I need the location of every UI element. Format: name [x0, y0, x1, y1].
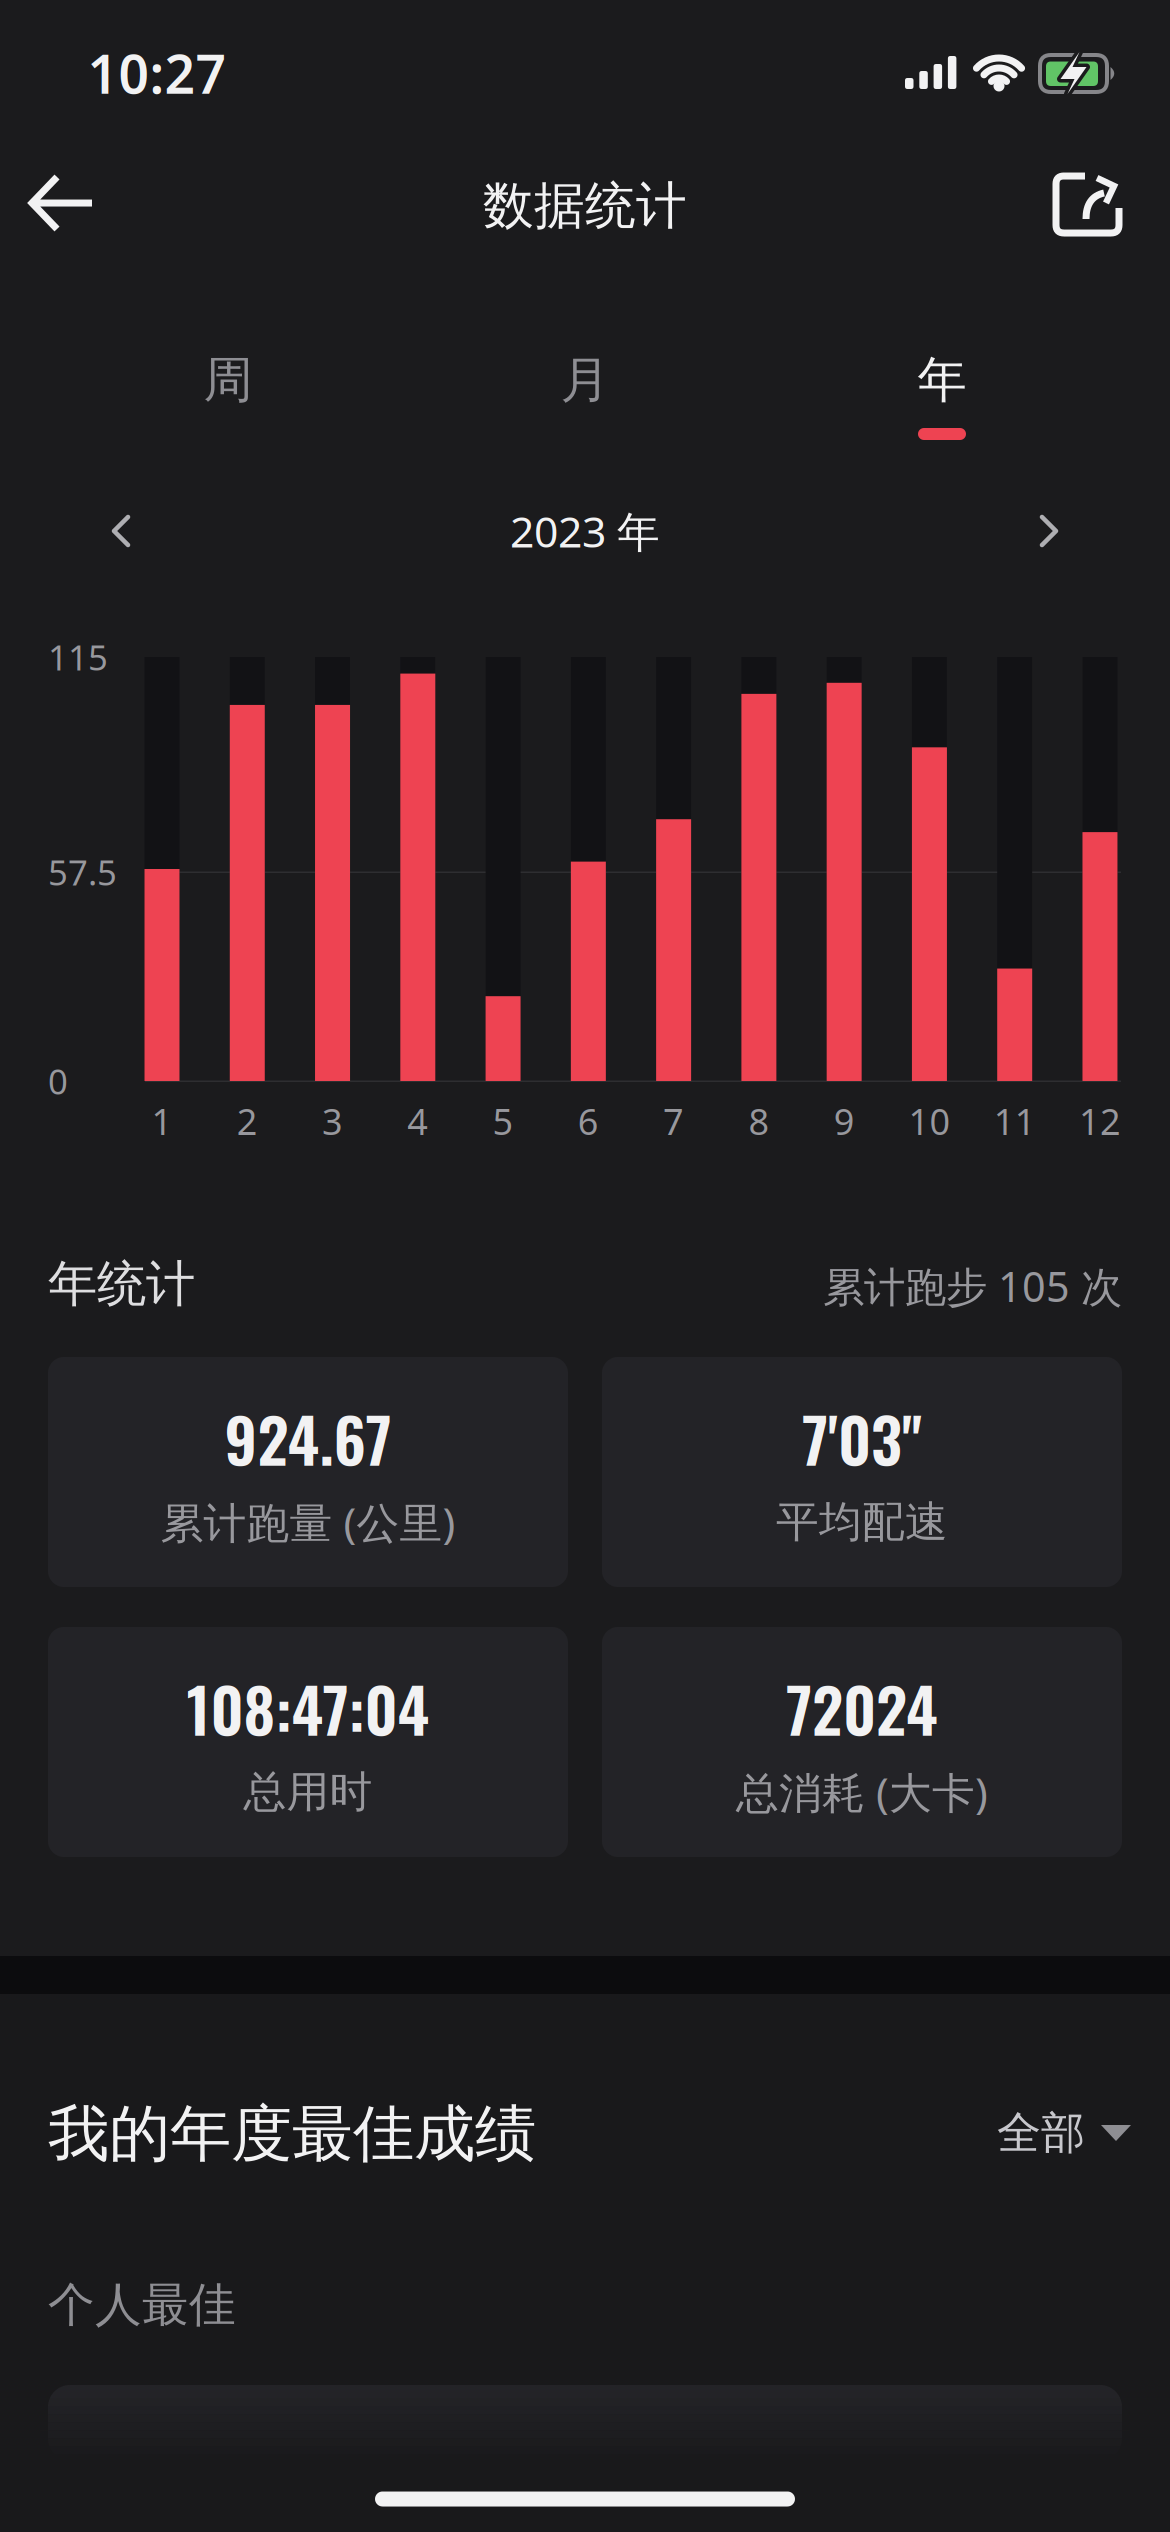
staticText: 9: [834, 1097, 855, 1145]
staticText: 11: [994, 1097, 1036, 1145]
staticText: 4: [407, 1097, 428, 1145]
staticText: 3: [322, 1097, 343, 1145]
staticText: 7'03'': [802, 1393, 922, 1483]
staticText: 924.67: [224, 1393, 391, 1483]
staticText: 72024: [786, 1663, 938, 1753]
staticText: 57.5: [48, 849, 117, 895]
button[interactable]: Previous year: [86, 496, 156, 566]
staticText: 0: [48, 1058, 68, 1104]
staticText: 5: [493, 1097, 514, 1145]
staticText: 年统计: [48, 1254, 195, 1314]
button[interactable]: 月: [435, 335, 735, 425]
staticText: 全部: [997, 2106, 1085, 2160]
staticText: 累计跑步 105 次: [823, 1259, 1122, 1313]
staticText: 115: [48, 634, 108, 680]
button[interactable]: 年: [792, 335, 1092, 425]
button[interactable]: 个人最佳记录: [48, 2385, 1122, 2460]
staticText: 108:47:04: [186, 1663, 429, 1753]
staticText: 7: [663, 1097, 684, 1145]
button[interactable]: 周: [78, 335, 378, 425]
button[interactable]: 全部: [997, 2088, 1131, 2178]
staticText: 我的年度最佳成绩: [48, 2096, 536, 2172]
staticText: 累计跑量 (公里): [160, 1494, 455, 1550]
staticText: 数据统计: [483, 175, 687, 237]
staticText: 平均配速: [776, 1496, 948, 1548]
staticText: 总用时: [243, 1766, 372, 1818]
staticText: 个人最佳: [48, 2276, 236, 2334]
staticText: 年: [917, 350, 966, 410]
staticText: 总消耗 (大卡): [736, 1764, 988, 1820]
staticText: 2: [237, 1097, 258, 1145]
staticText: 月: [560, 350, 609, 410]
button[interactable]: Back: [14, 155, 110, 251]
staticText: 10:27: [87, 38, 226, 108]
button[interactable]: Share: [1038, 157, 1134, 253]
staticText: 8: [748, 1097, 769, 1145]
staticText: 2023 年: [510, 503, 660, 559]
staticText: 6: [578, 1097, 599, 1145]
staticText: 1: [151, 1097, 172, 1145]
staticText: 12: [1079, 1097, 1121, 1145]
staticText: 10: [908, 1097, 950, 1145]
staticText: 周: [203, 350, 252, 410]
button[interactable]: Next year: [1014, 496, 1084, 566]
